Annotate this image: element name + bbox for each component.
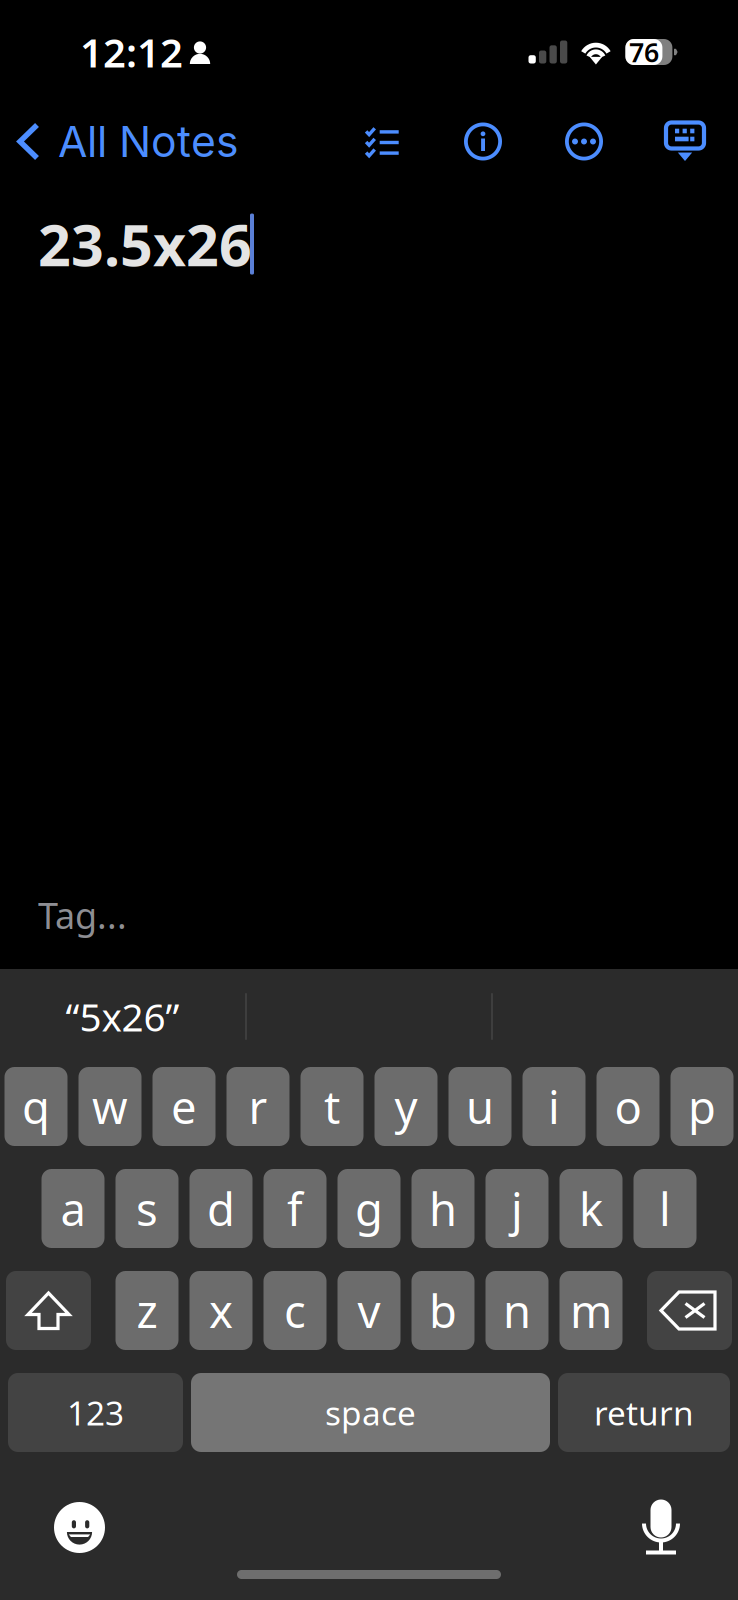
button[interactable]: c [263,1271,326,1350]
button[interactable]: “5x26” [0,974,245,1059]
staticText: q [22,1076,50,1137]
staticText: y [394,1076,417,1137]
button[interactable]: Dictation [640,1499,682,1555]
staticText: r [248,1076,267,1137]
staticText: 23.5x26 [38,206,252,282]
button[interactable]: s [115,1169,178,1248]
staticText: 76 [629,34,659,70]
button[interactable]: Hide Keyboard [648,104,722,179]
button[interactable]: 123 [8,1373,183,1452]
button[interactable]: x [189,1271,252,1350]
staticText: h [429,1178,457,1239]
button[interactable]: h [411,1169,474,1248]
button[interactable]: j [485,1169,548,1248]
button[interactable]: Emoji [54,1502,105,1553]
button[interactable]: t [300,1067,363,1146]
staticText: f [287,1178,303,1239]
button[interactable]: i [522,1067,585,1146]
button[interactable]: q [4,1067,67,1146]
staticText: v [357,1280,380,1341]
button[interactable]: e [152,1067,215,1146]
button[interactable]: f [263,1169,326,1248]
staticText: All Notes [58,116,239,167]
button[interactable]: m [559,1271,622,1350]
staticText: 12:12 [80,25,183,78]
staticText: z [136,1280,157,1341]
button[interactable]: Shift [6,1271,91,1350]
staticText: return [594,1390,694,1435]
staticText: space [325,1390,416,1435]
button[interactable]: k [559,1169,622,1248]
staticText: g [355,1178,383,1239]
button[interactable]: w [78,1067,141,1146]
staticText: x [209,1280,233,1341]
staticText: b [429,1280,457,1341]
button[interactable]: g [337,1169,400,1248]
staticText: 123 [67,1390,124,1435]
staticText: k [579,1178,603,1239]
button[interactable]: Delete [647,1271,732,1350]
button[interactable]: p [670,1067,733,1146]
button[interactable]: v [337,1271,400,1350]
button[interactable]: y [374,1067,437,1146]
staticText: m [570,1280,612,1341]
button[interactable]: All Notes [0,104,253,179]
button[interactable]: Checklist [345,104,419,179]
button[interactable]: o [596,1067,659,1146]
staticText: e [171,1076,197,1137]
staticText: a [60,1178,85,1239]
button[interactable]: a [41,1169,104,1248]
button[interactable]: l [633,1169,696,1248]
staticText: j [511,1178,523,1239]
staticText: t [324,1076,340,1137]
staticText: c [284,1280,306,1341]
button[interactable]: n [485,1271,548,1350]
staticText: o [614,1076,641,1137]
staticText: l [659,1178,671,1239]
button[interactable]: u [448,1067,511,1146]
staticText: i [548,1076,560,1137]
staticText: n [503,1280,531,1341]
staticText: s [136,1178,158,1239]
button[interactable]: z [115,1271,178,1350]
button[interactable]: r [226,1067,289,1146]
staticText: Tag... [38,891,127,939]
staticText: “5x26” [65,991,179,1042]
staticText: p [688,1076,716,1137]
button[interactable]: More [547,104,621,179]
button[interactable]: return [558,1373,730,1452]
staticText: d [207,1178,235,1239]
button[interactable]: d [189,1169,252,1248]
button[interactable]: space [191,1373,550,1452]
staticText: w [92,1076,128,1137]
button[interactable]: b [411,1271,474,1350]
staticText: u [466,1076,494,1137]
button[interactable]: Info [446,104,520,179]
